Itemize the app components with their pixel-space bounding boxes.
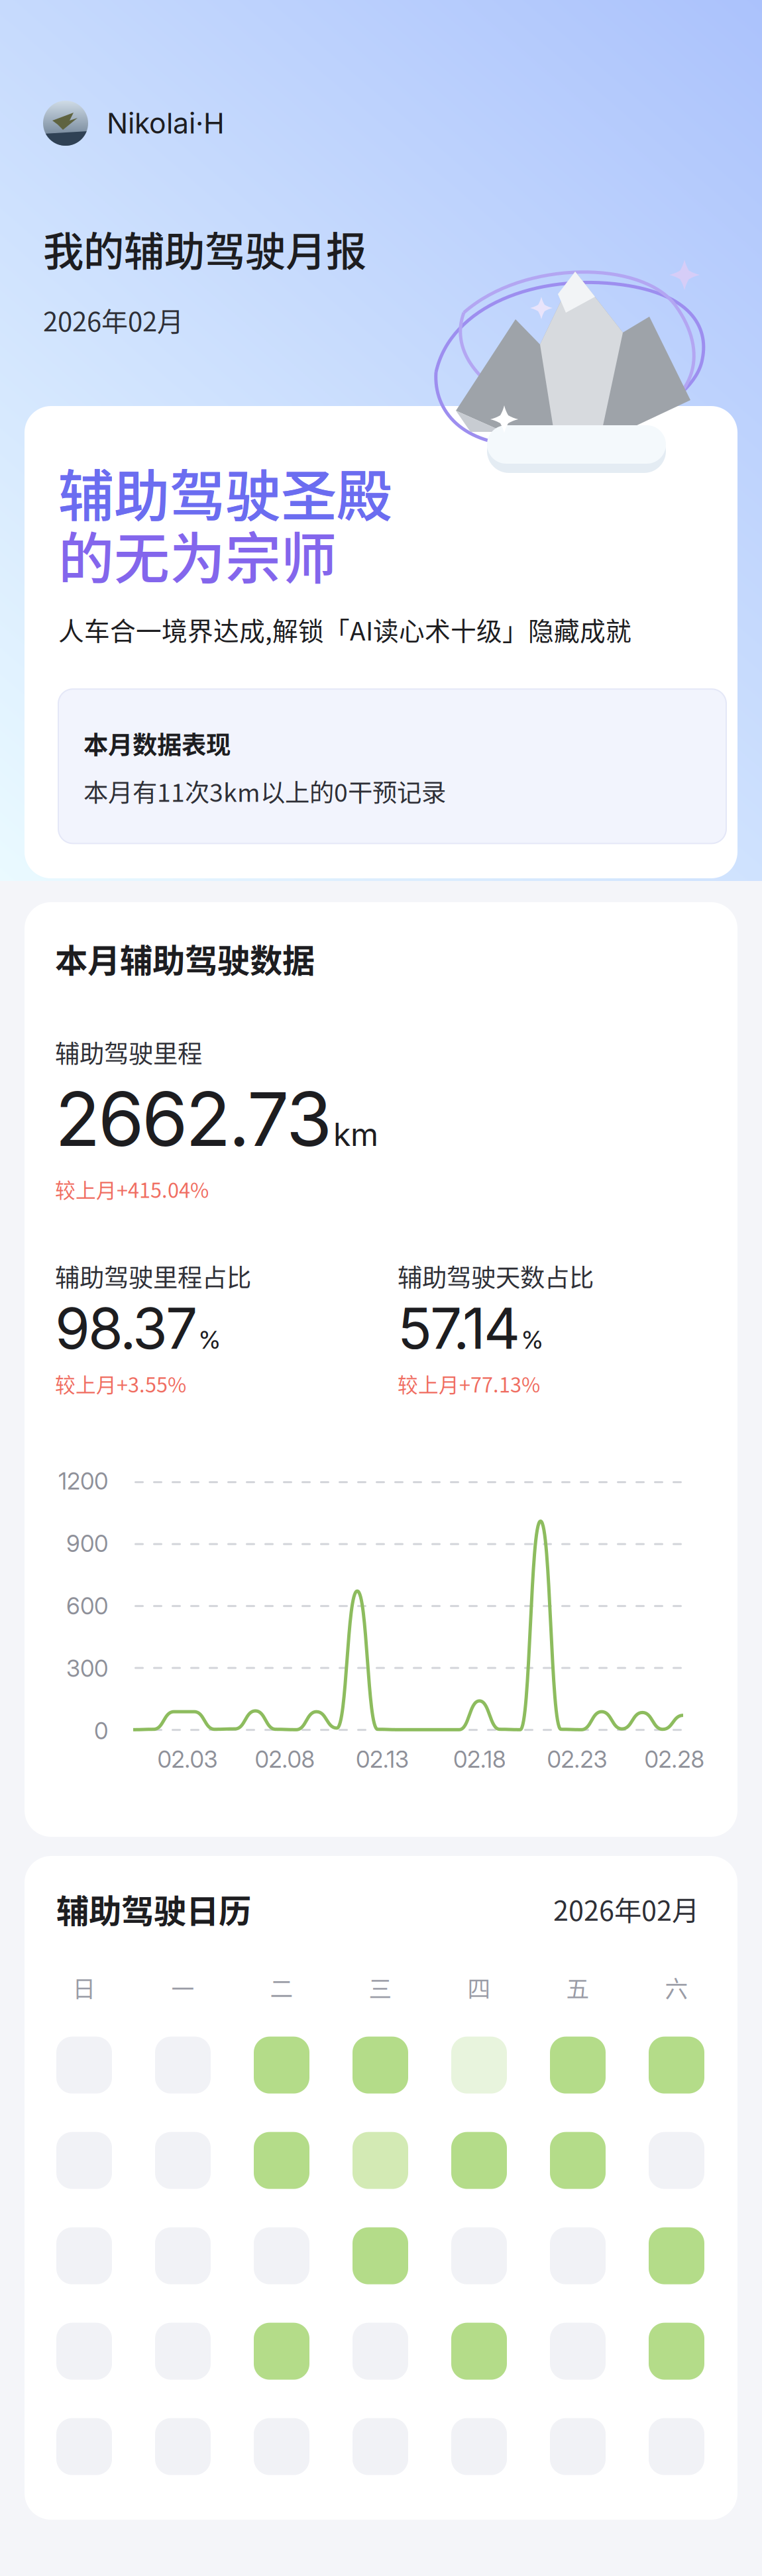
staticText: 02.03	[157, 1745, 218, 1773]
staticText: 900	[66, 1530, 108, 1557]
staticText: 02.23	[547, 1745, 607, 1773]
staticText: 较上月+415.04%	[55, 1174, 209, 1204]
staticText: Nikolai·H	[107, 106, 225, 140]
staticText: %	[199, 1325, 221, 1355]
staticText: 0	[94, 1717, 108, 1745]
staticText: 300	[66, 1655, 108, 1682]
staticText: 本月辅助驾驶数据	[55, 935, 315, 982]
staticText: 辅助驾驶圣殿 的无为宗师	[58, 452, 392, 595]
staticText: km	[333, 1115, 378, 1154]
staticText: 02.18	[453, 1745, 506, 1773]
staticText: 57.14	[398, 1294, 520, 1362]
staticText: 二	[270, 1971, 293, 2004]
staticText: 98.37	[55, 1294, 197, 1362]
staticText: 本月有11次3km以上的0干预记录	[83, 773, 446, 809]
staticText: %	[521, 1325, 543, 1355]
staticText: 辅助驾驶里程占比	[55, 1258, 251, 1294]
staticText: 四	[467, 1971, 491, 2004]
staticText: 五	[566, 1971, 589, 2004]
staticText: 600	[66, 1592, 108, 1620]
staticText: 02.13	[356, 1745, 409, 1773]
staticText: 我的辅助驾驶月报	[43, 219, 366, 278]
staticText: 较上月+77.13%	[398, 1369, 540, 1398]
staticText: 六	[665, 1971, 688, 2004]
staticText: 2662.73	[55, 1074, 332, 1164]
staticText: 02.08	[255, 1745, 315, 1773]
staticText: 三	[369, 1971, 392, 2004]
staticText: 较上月+3.55%	[55, 1369, 186, 1398]
staticText: 辅助驾驶天数占比	[398, 1258, 594, 1294]
staticText: 日	[73, 1971, 96, 2004]
staticText: 辅助驾驶日历	[56, 1885, 251, 1932]
staticText: 02.28	[644, 1745, 705, 1773]
staticText: 一	[171, 1971, 194, 2004]
staticText: 2026年02月	[553, 1889, 699, 1929]
button[interactable]: Nikolai·H	[43, 101, 225, 146]
staticText: 1200	[58, 1467, 108, 1495]
staticText: 辅助驾驶里程	[55, 1034, 202, 1070]
staticText: 辅助驾驶圣殿	[58, 452, 392, 532]
staticText: 2026年02月	[43, 301, 184, 339]
staticText: 人车合一境界达成,解锁「AI读心术十级」隐藏成就	[58, 611, 631, 648]
staticText: 本月数据表现	[83, 726, 231, 761]
